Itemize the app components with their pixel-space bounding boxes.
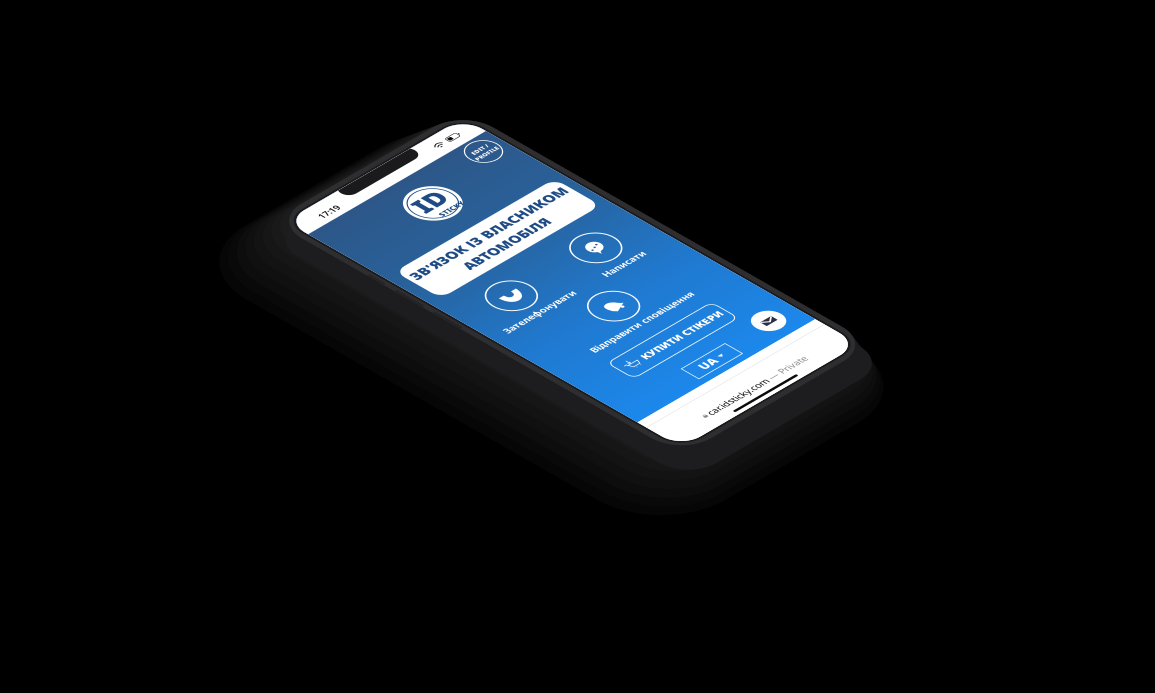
- staticText: АВТОМОБІЛЯ: [103, 252, 278, 286]
- staticText: ЗВ'ЯЗОК ІЗ ВЛАСНИКОМ: [29, 215, 352, 249]
